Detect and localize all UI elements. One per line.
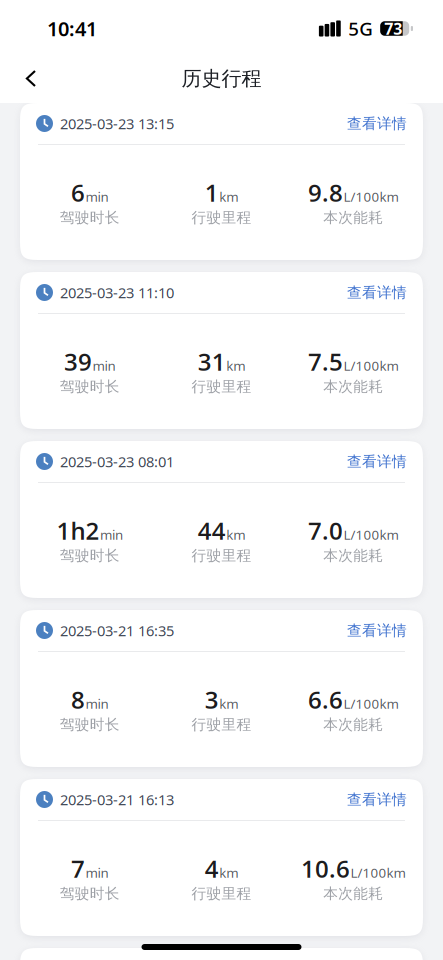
staticText: km bbox=[219, 188, 238, 205]
staticText: 本次能耗 bbox=[323, 378, 383, 396]
staticText: min bbox=[86, 188, 109, 205]
staticText: 2025-03-21 16:35 bbox=[60, 621, 174, 640]
staticText: km bbox=[226, 357, 245, 374]
staticText: 5G bbox=[348, 16, 373, 41]
staticText: 3 bbox=[205, 683, 219, 716]
button[interactable]: 查看详情 bbox=[347, 283, 407, 301]
staticText: 1 bbox=[205, 176, 219, 209]
staticText: 驾驶时长 bbox=[60, 547, 120, 565]
staticText: 查看详情 bbox=[347, 283, 407, 301]
staticText: km bbox=[219, 864, 238, 881]
staticText: min bbox=[86, 864, 109, 881]
staticText: L/100km bbox=[343, 526, 398, 543]
staticText: 39 bbox=[64, 345, 92, 378]
button[interactable]: Back bbox=[14, 59, 48, 98]
staticText: 本次能耗 bbox=[323, 547, 383, 565]
staticText: 行驶里程 bbox=[191, 716, 251, 734]
staticText: 10.6 bbox=[301, 852, 350, 885]
staticText: 4 bbox=[205, 852, 219, 885]
button[interactable]: 查看详情 bbox=[347, 790, 407, 808]
staticText: km bbox=[226, 526, 245, 543]
staticText: 1h2 bbox=[57, 514, 100, 547]
staticText: 历史行程 bbox=[181, 66, 261, 91]
staticText: 31 bbox=[198, 345, 226, 378]
staticText: 行驶里程 bbox=[191, 378, 251, 396]
staticText: km bbox=[219, 695, 238, 712]
button[interactable]: 查看详情 bbox=[347, 621, 407, 639]
staticText: 驾驶时长 bbox=[60, 378, 120, 396]
staticText: 行驶里程 bbox=[191, 209, 251, 227]
staticText: 44 bbox=[198, 514, 226, 547]
staticText: min bbox=[93, 357, 116, 374]
staticText: 9.8 bbox=[308, 176, 343, 209]
staticText: 查看详情 bbox=[347, 452, 407, 470]
staticText: 2025-03-23 13:15 bbox=[60, 114, 174, 133]
staticText: 本次能耗 bbox=[323, 885, 383, 903]
button[interactable]: 查看详情 bbox=[347, 114, 407, 132]
staticText: 8 bbox=[71, 683, 85, 716]
staticText: 查看详情 bbox=[347, 790, 407, 808]
staticText: 73 bbox=[384, 18, 402, 39]
staticText: 7.0 bbox=[308, 514, 343, 547]
staticText: 7 bbox=[71, 852, 85, 885]
staticText: 查看详情 bbox=[347, 114, 407, 132]
staticText: L/100km bbox=[343, 695, 398, 712]
staticText: 2025-03-23 11:10 bbox=[60, 283, 174, 302]
staticText: min bbox=[86, 695, 109, 712]
staticText: 驾驶时长 bbox=[60, 885, 120, 903]
staticText: 6 bbox=[71, 176, 85, 209]
staticText: L/100km bbox=[350, 864, 405, 881]
staticText: 行驶里程 bbox=[191, 547, 251, 565]
staticText: 行驶里程 bbox=[191, 885, 251, 903]
staticText: 本次能耗 bbox=[323, 209, 383, 227]
staticText: 驾驶时长 bbox=[60, 716, 120, 734]
staticText: min bbox=[100, 526, 123, 543]
staticText: L/100km bbox=[343, 357, 398, 374]
staticText: 本次能耗 bbox=[323, 716, 383, 734]
staticText: 6.6 bbox=[308, 683, 343, 716]
staticText: 2025-03-21 16:13 bbox=[60, 790, 174, 809]
button[interactable]: 查看详情 bbox=[347, 452, 407, 470]
staticText: 10:41 bbox=[47, 15, 97, 42]
staticText: 驾驶时长 bbox=[60, 209, 120, 227]
staticText: 7.5 bbox=[308, 345, 343, 378]
staticText: 2025-03-23 08:01 bbox=[60, 452, 174, 471]
staticText: L/100km bbox=[343, 188, 398, 205]
staticText: 查看详情 bbox=[347, 621, 407, 639]
